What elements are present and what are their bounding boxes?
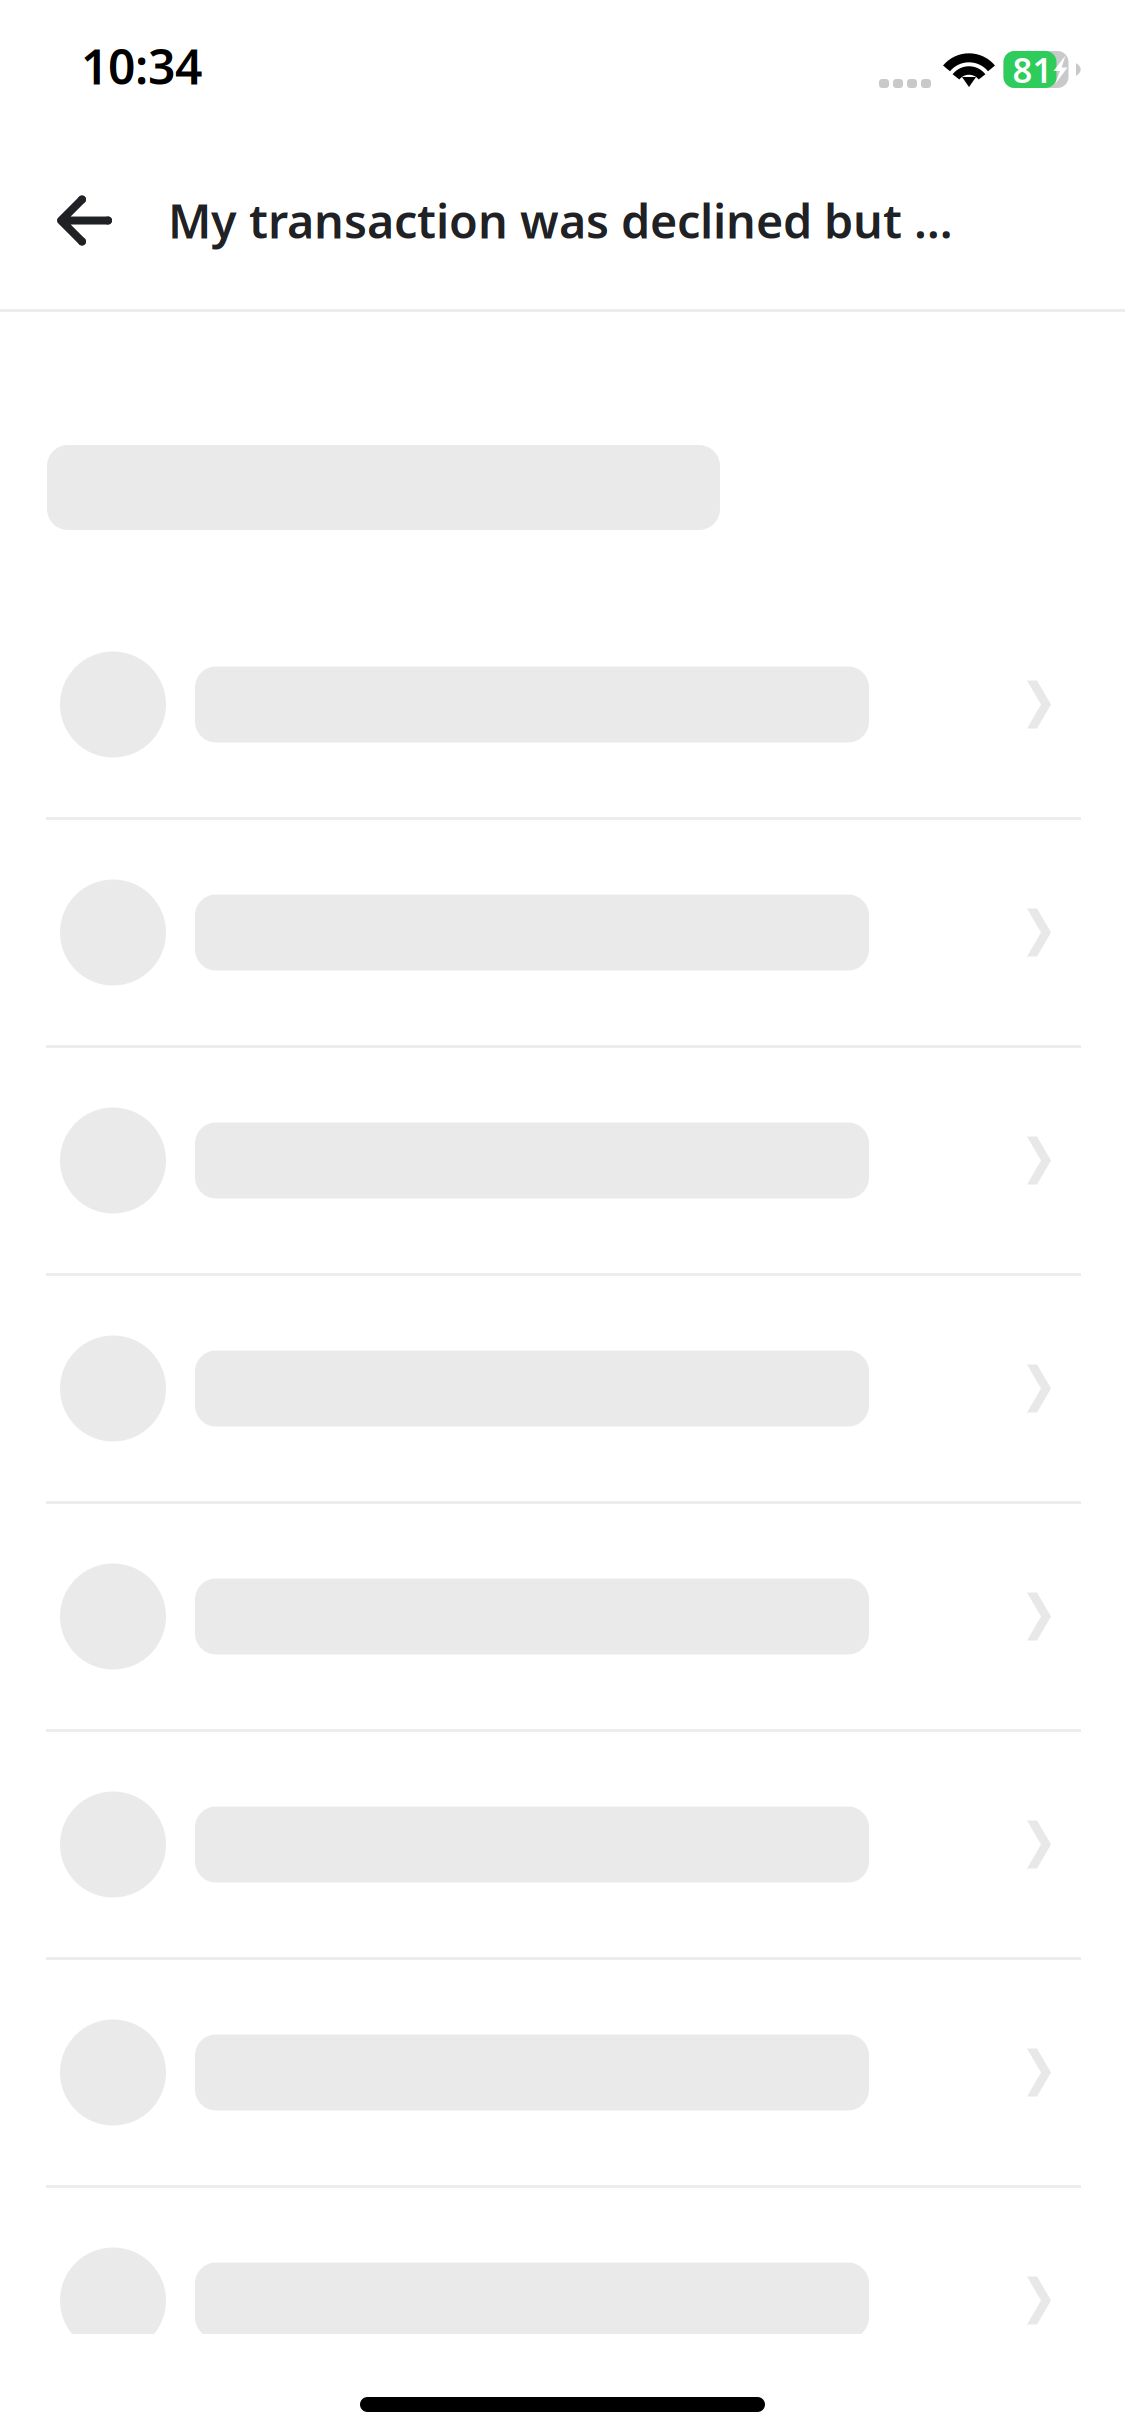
button[interactable]: Loading item bbox=[0, 1732, 1125, 1960]
button[interactable]: Loading item bbox=[0, 1504, 1125, 1732]
button[interactable]: Loading item bbox=[0, 1960, 1125, 2188]
staticText: My transaction was declined but I g… bbox=[168, 189, 965, 251]
staticText: 10:34 bbox=[81, 34, 202, 98]
button[interactable]: Loading item bbox=[0, 2188, 1125, 2416]
button[interactable]: Loading item bbox=[0, 592, 1125, 820]
button[interactable]: Back bbox=[28, 154, 140, 286]
button[interactable]: Loading item bbox=[0, 1276, 1125, 1504]
button[interactable]: Loading item bbox=[0, 820, 1125, 1048]
button[interactable]: Loading item bbox=[0, 1048, 1125, 1276]
staticText: 81 bbox=[1012, 46, 1052, 92]
